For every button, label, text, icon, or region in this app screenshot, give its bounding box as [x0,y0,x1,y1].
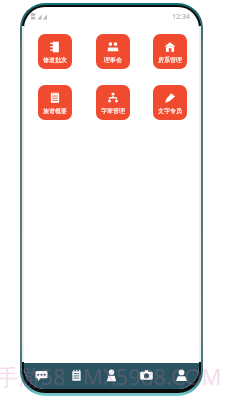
button[interactable]: Records [59,364,94,389]
staticText: 文字专员 [158,107,182,115]
button[interactable]: 字辈管理 [96,85,130,120]
button[interactable]: Camera [129,364,164,389]
staticText: 手游58 · MX5988.COM [0,361,221,391]
button[interactable]: Chat [24,364,59,389]
button[interactable]: Members [94,364,129,389]
button[interactable]: 修道批次 [38,34,72,69]
staticText: 字辈管理 [101,107,125,115]
staticText: 房系管理 [158,56,182,64]
button[interactable]: Profile [164,364,199,389]
button[interactable]: 房系管理 [153,34,187,69]
button[interactable]: 族谱概要 [38,85,72,120]
staticText: 理事会 [104,56,122,64]
staticText: 族谱概要 [43,107,67,115]
staticText: 修道批次 [43,56,67,64]
button[interactable]: 文字专员 [153,85,187,120]
staticText: 12:34 [172,12,190,22]
button[interactable]: 理事会 [96,34,130,69]
